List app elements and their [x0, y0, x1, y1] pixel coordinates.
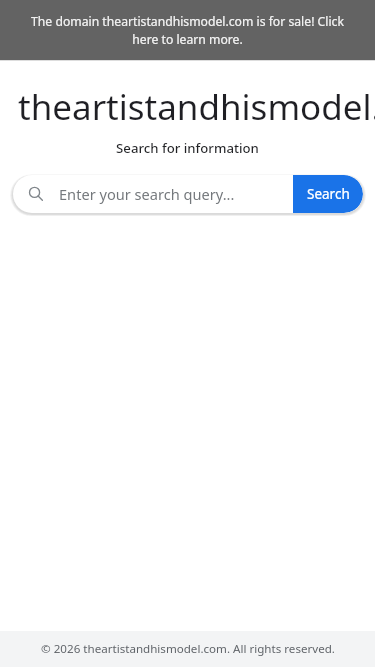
button[interactable]: Search — [13, 175, 59, 213]
staticText: © 2026 theartistandhismodel.com. All rig… — [41, 641, 335, 657]
staticText: The domain theartistandhismodel.com is f… — [18, 13, 357, 48]
staticText: theartistandhismodel.com — [18, 83, 375, 125]
staticText: Search — [307, 185, 350, 203]
staticText: Enter your search query... — [59, 184, 235, 204]
button[interactable]: Search — [293, 175, 363, 213]
staticText: Search for information — [116, 139, 259, 157]
button[interactable]: The domain theartistandhismodel.com is f… — [0, 0, 375, 60]
button[interactable]: Enter your search query... — [59, 175, 363, 213]
